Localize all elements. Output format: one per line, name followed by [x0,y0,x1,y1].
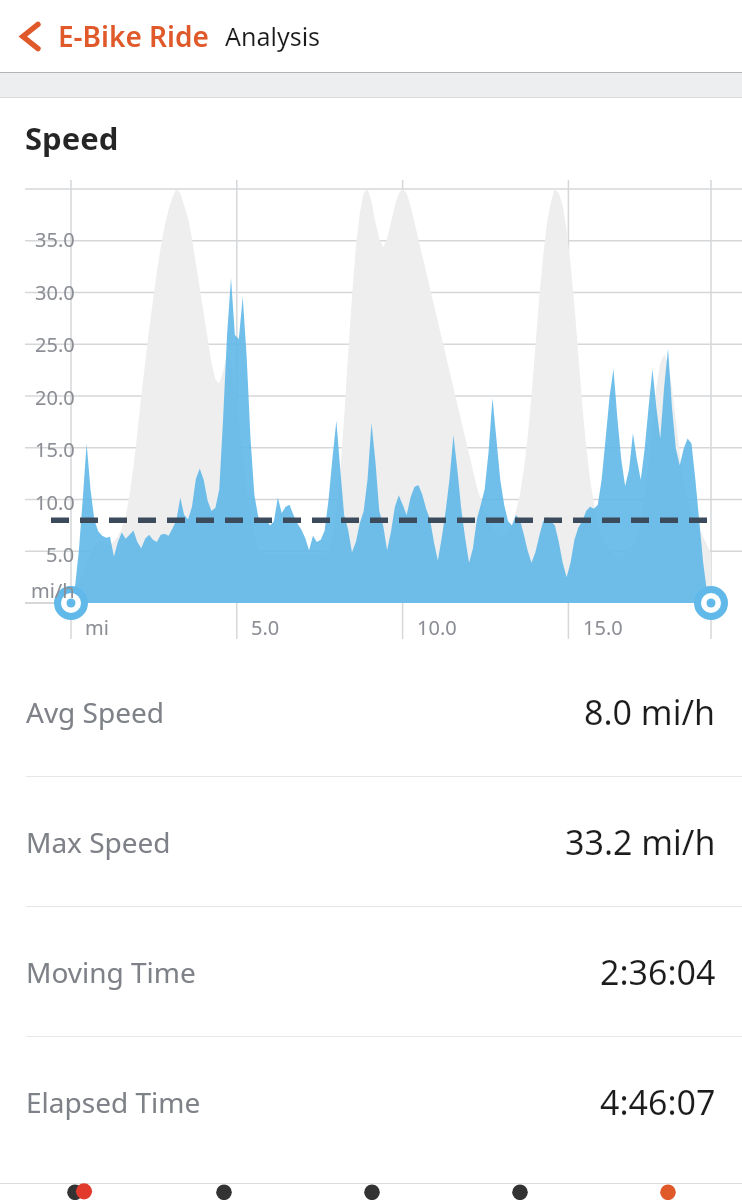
staticText: 35.0 [35,226,75,253]
staticText: 15.0 [583,614,623,641]
staticText: 33.2 mi/h [565,819,716,865]
staticText: 5.0 [46,541,75,568]
staticText: Moving Time [26,953,196,991]
staticText: Speed [25,117,119,159]
staticText: 20.0 [35,384,75,411]
button[interactable]: Explore [298,1184,446,1200]
button[interactable]: Home [0,1184,149,1200]
button[interactable]: You [594,1184,742,1200]
staticText: Max Speed [26,823,171,861]
button[interactable]: Elapsed Time [0,1037,742,1166]
button[interactable]: Max Speed [0,777,742,906]
staticText: 25.0 [35,331,75,358]
staticText: 15.0 [35,436,75,463]
staticText: 5.0 [251,614,280,641]
button[interactable]: Record [446,1184,594,1200]
button[interactable]: Groups [149,1184,298,1200]
staticText: Avg Speed [26,693,165,731]
staticText: mi [85,614,109,641]
staticText: 2:36:04 [600,949,716,995]
button[interactable]: Moving Time [0,907,742,1036]
staticText: Analysis [225,19,321,53]
staticText: Elapsed Time [26,1083,201,1121]
button[interactable]: Back [4,9,58,63]
staticText: 8.0 mi/h [584,689,716,735]
staticText: 4:46:07 [600,1079,716,1125]
staticText: 10.0 [35,489,75,516]
staticText: mi/h [31,577,75,604]
staticText: 30.0 [35,279,75,306]
button[interactable]: Avg Speed [0,647,742,776]
staticText: 10.0 [417,614,457,641]
button[interactable]: E-Bike Ride [58,17,209,55]
